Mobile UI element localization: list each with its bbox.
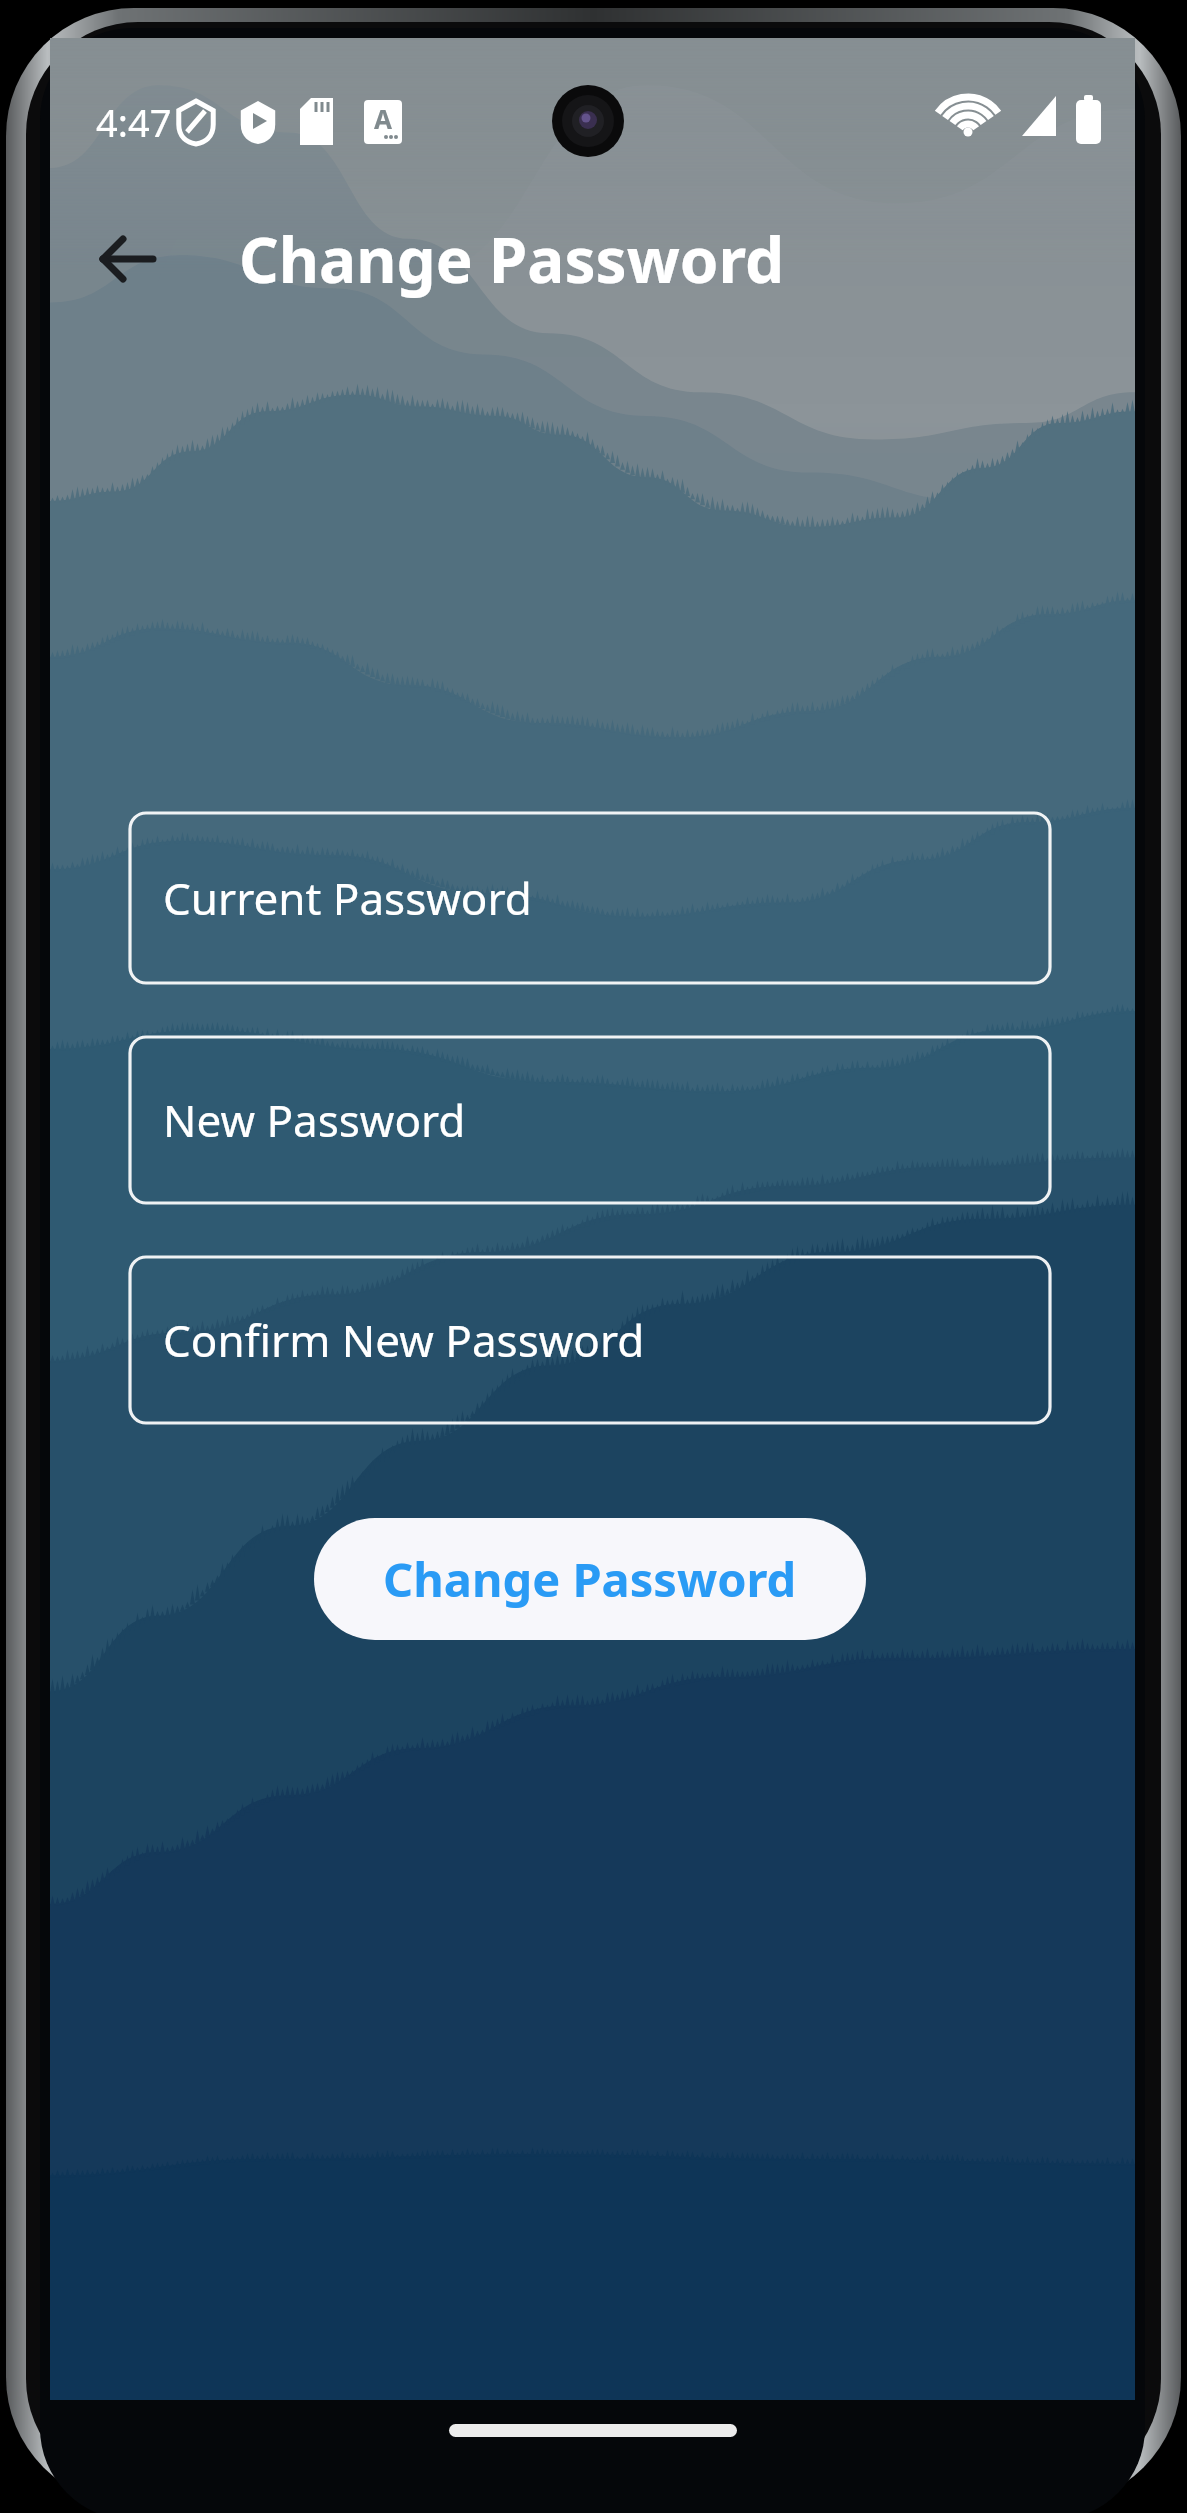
button[interactable] [130, 1257, 1050, 1423]
button[interactable] [314, 1518, 866, 1640]
button[interactable] [130, 813, 1050, 983]
button[interactable] [130, 1037, 1050, 1203]
button[interactable]: Back [82, 206, 192, 316]
